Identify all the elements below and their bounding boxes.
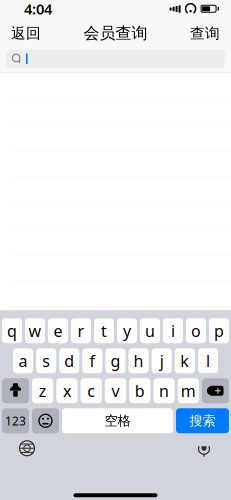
button[interactable]: u: [140, 318, 160, 343]
button[interactable]: w: [25, 318, 45, 343]
button[interactable]: j: [152, 348, 172, 373]
staticText: 查询: [190, 24, 220, 42]
staticText: x: [63, 380, 71, 401]
button[interactable]: m: [178, 378, 199, 403]
button[interactable]: i: [163, 318, 183, 343]
button[interactable]: b: [129, 378, 150, 403]
staticText: w: [28, 320, 41, 341]
staticText: a: [19, 350, 28, 371]
button[interactable]: d: [59, 348, 79, 373]
staticText: 会员查询: [83, 23, 147, 43]
staticText: y: [123, 320, 131, 341]
button[interactable]: h: [129, 348, 149, 373]
staticText: l: [206, 350, 210, 371]
staticText: v: [111, 380, 119, 401]
staticText: 4:04: [24, 0, 52, 18]
button[interactable]: z: [32, 378, 53, 403]
staticText: k: [180, 350, 189, 371]
button[interactable]: s: [36, 348, 56, 373]
staticText: d: [64, 350, 74, 371]
button[interactable]: p: [209, 318, 229, 343]
staticText: h: [134, 350, 144, 371]
button[interactable]: Next keyboard: [12, 436, 42, 460]
button[interactable]: c: [81, 378, 102, 403]
button[interactable]: q: [2, 318, 22, 343]
button[interactable]: o: [186, 318, 206, 343]
staticText: p: [214, 320, 224, 341]
button[interactable]: y: [117, 318, 137, 343]
button[interactable]: v: [105, 378, 126, 403]
staticText: f: [89, 350, 95, 371]
staticText: o: [191, 320, 201, 341]
staticText: s: [42, 350, 50, 371]
button[interactable]: x: [56, 378, 78, 403]
staticText: c: [87, 380, 95, 401]
button[interactable]: n: [153, 378, 175, 403]
button[interactable]: 123: [2, 408, 29, 433]
button[interactable]: f: [82, 348, 102, 373]
staticText: e: [53, 320, 62, 341]
button[interactable]: g: [105, 348, 125, 373]
button[interactable]: k: [175, 348, 195, 373]
staticText: z: [39, 380, 47, 401]
button[interactable]: Emoji: [32, 408, 59, 433]
staticText: g: [110, 350, 120, 371]
button[interactable]: a: [13, 348, 33, 373]
button[interactable]: t: [94, 318, 114, 343]
staticText: i: [171, 320, 175, 341]
staticText: m: [181, 380, 196, 401]
staticText: 搜索: [189, 413, 215, 429]
button[interactable]: l: [198, 348, 218, 373]
button[interactable]: Shift: [2, 378, 29, 403]
button[interactable]: r: [71, 318, 91, 343]
staticText: n: [159, 380, 169, 401]
staticText: u: [145, 320, 155, 341]
button[interactable]: Dictation: [189, 436, 219, 460]
button[interactable]: Delete: [202, 378, 229, 403]
staticText: b: [135, 380, 145, 401]
staticText: r: [77, 320, 84, 341]
staticText: 123: [5, 413, 26, 429]
button[interactable]: 返回: [0, 19, 52, 47]
button[interactable]: 查询: [179, 19, 231, 47]
button[interactable]: 搜索: [176, 408, 229, 433]
staticText: j: [160, 350, 164, 371]
button[interactable]: e: [48, 318, 68, 343]
button[interactable]: [6, 50, 225, 68]
staticText: t: [101, 320, 107, 341]
button[interactable]: 空格: [62, 408, 173, 433]
staticText: 返回: [11, 24, 41, 42]
staticText: 空格: [104, 413, 130, 429]
staticText: q: [7, 320, 17, 341]
